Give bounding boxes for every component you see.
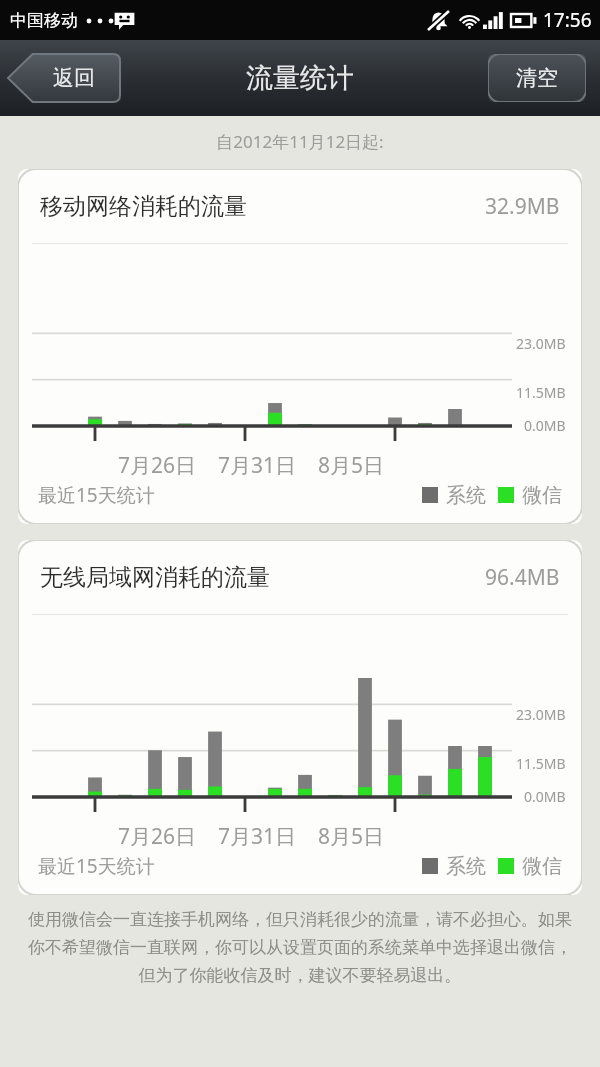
staticText: 使用微信会一直连接手机网络，但只消耗很少的流量，请不必担心。如果你不希望微信一直…: [22, 909, 578, 986]
staticText: 7月31日: [218, 451, 297, 480]
staticText: 8月5日: [318, 822, 385, 851]
staticText: 微信: [522, 854, 562, 879]
staticText: 系统: [446, 483, 486, 508]
staticText: 无线局域网消耗的流量: [40, 563, 270, 592]
staticText: 最近15天统计: [38, 853, 155, 879]
button[interactable]: 清空: [488, 54, 586, 102]
staticText: 清空: [516, 65, 558, 91]
staticText: 系统: [446, 854, 486, 879]
staticText: 96.4MB: [485, 563, 560, 592]
staticText: 8月5日: [318, 451, 385, 480]
button[interactable]: 返回: [8, 54, 120, 102]
staticText: 23.0MB: [516, 705, 566, 724]
staticText: 移动网络消耗的流量: [40, 192, 247, 221]
staticText: 0.0MB: [524, 787, 566, 806]
staticText: 23.0MB: [516, 334, 566, 353]
button[interactable]: 无线局域网消耗的流量: [18, 540, 582, 895]
staticText: 自2012年11月12日起:: [0, 130, 600, 153]
button[interactable]: 移动网络消耗的流量: [18, 169, 582, 524]
staticText: 最近15天统计: [38, 482, 155, 508]
staticText: 32.9MB: [485, 192, 560, 221]
staticText: 7月26日: [118, 451, 197, 480]
staticText: 微信: [522, 483, 562, 508]
staticText: 7月31日: [218, 822, 297, 851]
staticText: 中国移动: [10, 10, 78, 31]
staticText: 11.5MB: [516, 383, 566, 402]
staticText: 7月26日: [118, 822, 197, 851]
staticText: 17:56: [543, 7, 592, 33]
staticText: 流量统计: [246, 61, 354, 95]
staticText: 返回: [53, 65, 95, 91]
staticText: 11.5MB: [516, 754, 566, 773]
staticText: 0.0MB: [524, 416, 566, 435]
